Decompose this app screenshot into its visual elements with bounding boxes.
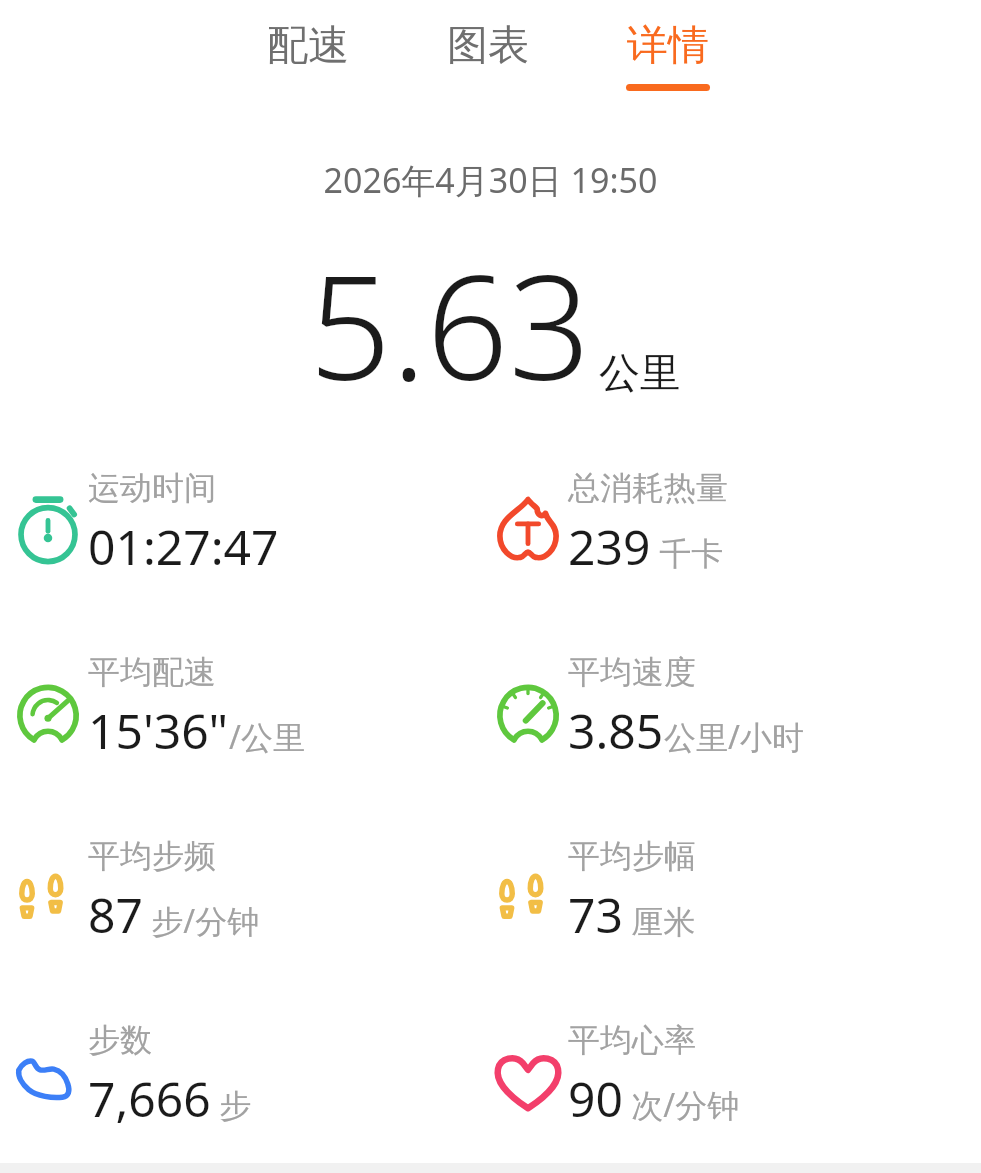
- button[interactable]: 配速: [233, 10, 383, 101]
- button[interactable]: Step count: [2, 1016, 494, 1166]
- staticText: 步: [211, 1083, 252, 1127]
- other: Average heart rate: [490, 1044, 566, 1120]
- staticText: 73: [568, 882, 623, 947]
- button[interactable]: Average cadence: [2, 832, 494, 982]
- other: Calories burned: [490, 492, 566, 568]
- staticText: 7,666: [88, 1066, 211, 1131]
- staticText: /公里: [229, 715, 305, 759]
- staticText: 239: [568, 514, 651, 579]
- button[interactable]: Exercise time: [2, 464, 494, 614]
- staticText: 90: [568, 1066, 623, 1131]
- button[interactable]: Calories burned: [482, 464, 974, 614]
- button[interactable]: Average speed: [482, 648, 974, 798]
- staticText: 3.85: [568, 698, 664, 763]
- staticText: 总消耗热量: [568, 468, 728, 508]
- staticText: 01:27:47: [88, 514, 279, 579]
- staticText: 15'36": [88, 698, 229, 763]
- other: Average stride: [490, 860, 566, 936]
- staticText: 2026年4月30日 19:50: [0, 157, 981, 203]
- staticText: 平均速度: [568, 652, 696, 692]
- button[interactable]: 详情: [593, 10, 743, 101]
- other: Average cadence: [10, 860, 86, 936]
- staticText: 配速: [267, 20, 349, 72]
- button[interactable]: Average pace: [2, 648, 494, 798]
- staticText: 5.63: [309, 226, 591, 422]
- other: Average pace: [10, 676, 86, 752]
- other: Exercise time: [10, 492, 86, 568]
- button[interactable]: Average heart rate: [482, 1016, 974, 1166]
- staticText: 平均配速: [88, 652, 216, 692]
- staticText: 平均步幅: [568, 836, 696, 876]
- staticText: 运动时间: [88, 468, 216, 508]
- button[interactable]: Average stride: [482, 832, 974, 982]
- staticText: 平均步频: [88, 836, 216, 876]
- staticText: 次/分钟: [623, 1083, 740, 1127]
- staticText: 平均心率: [568, 1020, 696, 1060]
- staticText: 步数: [88, 1020, 152, 1060]
- staticText: 公里/小时: [664, 715, 804, 759]
- button[interactable]: 图表: [413, 10, 563, 101]
- other: Step count: [10, 1044, 86, 1120]
- staticText: 公里: [599, 348, 681, 400]
- staticText: 详情: [627, 20, 709, 72]
- staticText: 千卡: [651, 531, 724, 575]
- staticText: 厘米: [623, 899, 696, 943]
- staticText: 87: [88, 882, 143, 947]
- staticText: 步/分钟: [143, 899, 260, 943]
- other: Average speed: [490, 676, 566, 752]
- staticText: 图表: [447, 20, 529, 72]
